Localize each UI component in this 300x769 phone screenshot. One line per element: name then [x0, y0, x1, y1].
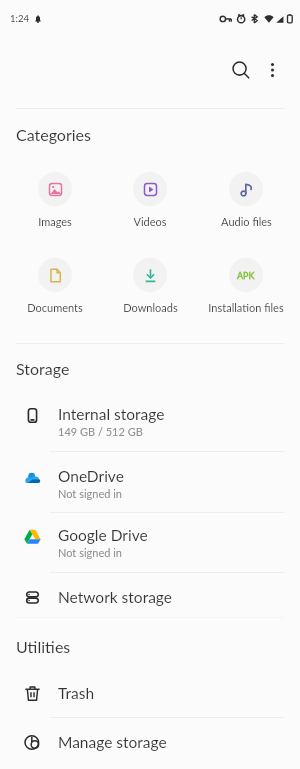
staticText: Internal storage	[58, 405, 165, 424]
staticText: Utilities	[16, 637, 71, 656]
staticText: Installation files	[208, 301, 284, 314]
staticText: Audio files	[221, 215, 272, 228]
button[interactable]: Images	[8, 172, 102, 228]
staticText: Documents	[27, 301, 83, 314]
staticText: Images	[38, 215, 72, 228]
staticText: Trash	[58, 684, 95, 703]
button[interactable]: Documents	[8, 258, 102, 314]
button[interactable]: Manage storage	[0, 718, 300, 762]
staticText: Categories	[16, 125, 91, 144]
button[interactable]: APK	[199, 258, 293, 314]
button[interactable]: Audio files	[199, 172, 293, 228]
staticText: APK	[237, 270, 255, 281]
staticText: OneDrive	[58, 467, 124, 486]
button[interactable]: Search	[225, 50, 256, 90]
staticText: Storage	[16, 359, 70, 378]
staticText: Not signed in	[58, 487, 122, 500]
staticText: 1:24	[10, 13, 29, 24]
button[interactable]: Trash	[0, 666, 300, 717]
staticText: Google Drive	[58, 526, 148, 545]
button[interactable]: Downloads	[103, 258, 197, 314]
staticText: Not signed in	[58, 546, 122, 559]
staticText: 149 GB / 512 GB	[58, 425, 143, 438]
button[interactable]: Network storage	[0, 573, 300, 617]
staticText: Downloads	[123, 301, 178, 314]
staticText: Videos	[133, 215, 167, 228]
button[interactable]: Internal storage	[0, 390, 300, 451]
staticText: Manage storage	[58, 733, 167, 752]
button[interactable]: Videos	[103, 172, 197, 228]
button[interactable]: Google Drive	[0, 513, 300, 572]
staticText: Network storage	[58, 588, 172, 607]
button[interactable]: More options	[256, 50, 288, 90]
button[interactable]: OneDrive	[0, 452, 300, 512]
